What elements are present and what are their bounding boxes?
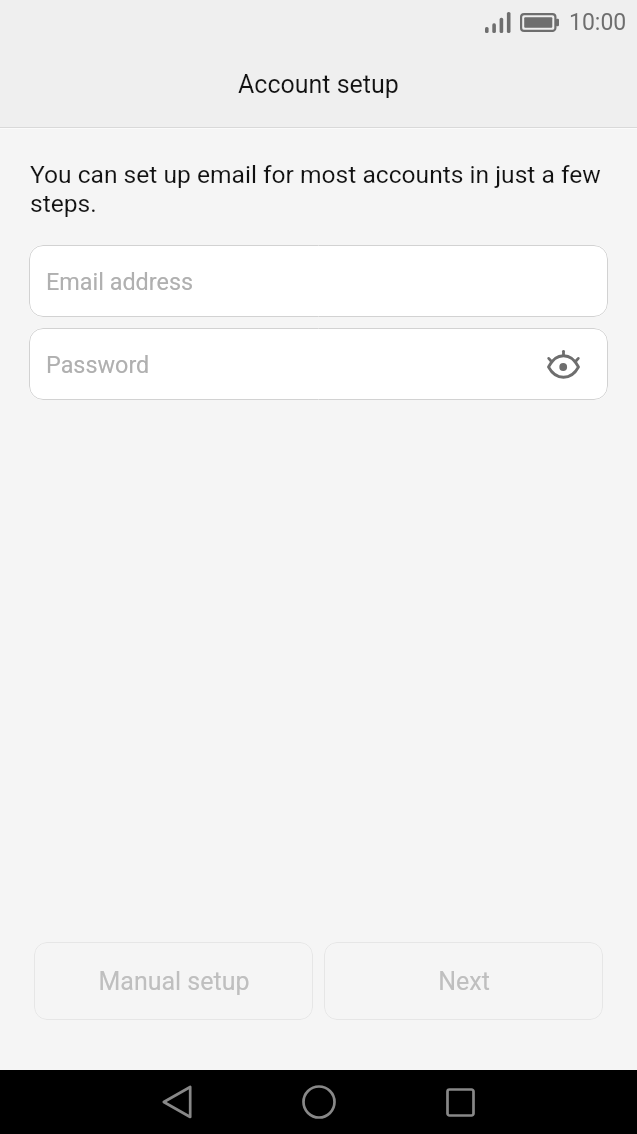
staticText: Next: [438, 967, 490, 996]
staticText: Email address: [46, 268, 194, 295]
button[interactable]: Recent apps: [412, 1070, 508, 1134]
staticText: Account setup: [238, 70, 399, 99]
button[interactable]: Manual setup: [34, 942, 313, 1020]
button[interactable]: Back: [129, 1070, 225, 1134]
button[interactable]: Password: [29, 328, 608, 400]
button[interactable]: Next: [324, 942, 603, 1020]
staticText: Password: [46, 351, 150, 378]
staticText: Manual setup: [98, 967, 250, 996]
button[interactable]: Email address: [29, 245, 608, 317]
button[interactable]: Show password: [540, 341, 586, 387]
staticText: You can set up email for most accounts i…: [30, 160, 615, 218]
button[interactable]: Home: [271, 1070, 367, 1134]
staticText: 10:00: [569, 9, 627, 36]
